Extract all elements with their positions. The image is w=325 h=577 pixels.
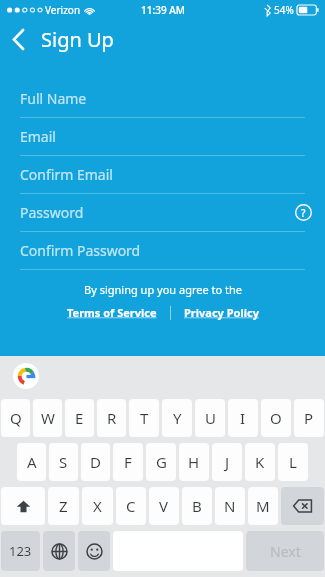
button[interactable]: G (146, 443, 176, 481)
button[interactable]: Emoji (78, 531, 110, 571)
staticText: By signing up you agree to the (84, 282, 242, 297)
staticText: Q (10, 408, 22, 428)
staticText: N (224, 496, 236, 516)
staticText: B (192, 496, 202, 516)
button[interactable]: C (116, 487, 146, 525)
staticText: K (255, 452, 265, 472)
button[interactable]: Full Name (0, 80, 325, 118)
button[interactable]: W (33, 399, 62, 437)
button[interactable]: K (245, 443, 275, 481)
staticText: Password (20, 203, 84, 222)
staticText: Confirm Email (20, 165, 113, 184)
button[interactable]: Confirm Email (0, 156, 325, 194)
button[interactable]: Password help (295, 204, 312, 221)
button[interactable]: T (129, 399, 159, 437)
button[interactable]: Confirm Password (0, 232, 325, 270)
staticText: M (256, 496, 270, 516)
button[interactable]: Google search (13, 363, 39, 389)
button[interactable]: Backspace (281, 487, 324, 525)
button[interactable]: Shift (1, 487, 45, 525)
staticText: C (126, 496, 136, 516)
staticText: S (59, 452, 68, 472)
button[interactable]: Q (1, 399, 30, 437)
staticText: Z (59, 496, 68, 516)
button[interactable]: Password (0, 194, 325, 232)
staticText: E (75, 408, 84, 428)
button[interactable]: S (49, 443, 78, 481)
staticText: U (205, 408, 216, 428)
staticText: 123 (9, 542, 32, 560)
button[interactable]: M (248, 487, 278, 525)
staticText: Verizon (45, 3, 81, 17)
staticText: Email (20, 127, 56, 146)
staticText: Full Name (20, 89, 87, 108)
staticText: T (140, 408, 149, 428)
staticText: O (270, 408, 282, 428)
button[interactable]: Email (0, 118, 325, 156)
button[interactable]: V (149, 487, 179, 525)
button[interactable]: Change language (43, 531, 75, 571)
staticText: R (107, 408, 117, 428)
button[interactable]: Y (162, 399, 192, 437)
button[interactable]: F (113, 443, 143, 481)
staticText: 11:39 AM (141, 3, 185, 17)
button[interactable]: X (82, 487, 113, 525)
staticText: A (27, 452, 37, 472)
staticText: Privacy Policy (184, 305, 259, 320)
button[interactable]: E (65, 399, 94, 437)
button[interactable]: U (195, 399, 225, 437)
staticText: I (240, 408, 246, 428)
button[interactable]: B (182, 487, 212, 525)
staticText: D (90, 452, 101, 472)
button[interactable]: Back (0, 20, 36, 58)
staticText: G (156, 452, 167, 472)
staticText: ? (301, 206, 306, 220)
button[interactable]: P (294, 399, 324, 437)
staticText: P (304, 408, 314, 428)
staticText: H (188, 452, 200, 472)
button[interactable]: Terms of Service (63, 303, 161, 322)
staticText: F (124, 452, 132, 472)
staticText: L (289, 452, 297, 472)
staticText: Terms of Service (67, 305, 157, 320)
button[interactable]: J (212, 443, 242, 481)
button[interactable]: D (81, 443, 110, 481)
staticText: Y (173, 408, 182, 428)
staticText: J (225, 452, 230, 472)
staticText: Next (270, 542, 301, 561)
staticText: Confirm Password (20, 241, 141, 260)
button[interactable]: I (228, 399, 258, 437)
button[interactable]: H (179, 443, 209, 481)
staticText: V (159, 496, 169, 516)
staticText: Sign Up (41, 26, 114, 53)
button[interactable]: R (97, 399, 126, 437)
button[interactable]: Z (48, 487, 79, 525)
button[interactable]: O (261, 399, 291, 437)
staticText: W (41, 408, 55, 428)
staticText: X (93, 496, 102, 516)
button[interactable]: N (215, 487, 245, 525)
button[interactable]: L (278, 443, 308, 481)
button[interactable]: Privacy Policy (180, 303, 263, 322)
staticText: 54% (274, 3, 294, 17)
button[interactable]: 123 (1, 531, 40, 571)
button[interactable]: A (17, 443, 46, 481)
button[interactable]: Next (246, 531, 324, 571)
